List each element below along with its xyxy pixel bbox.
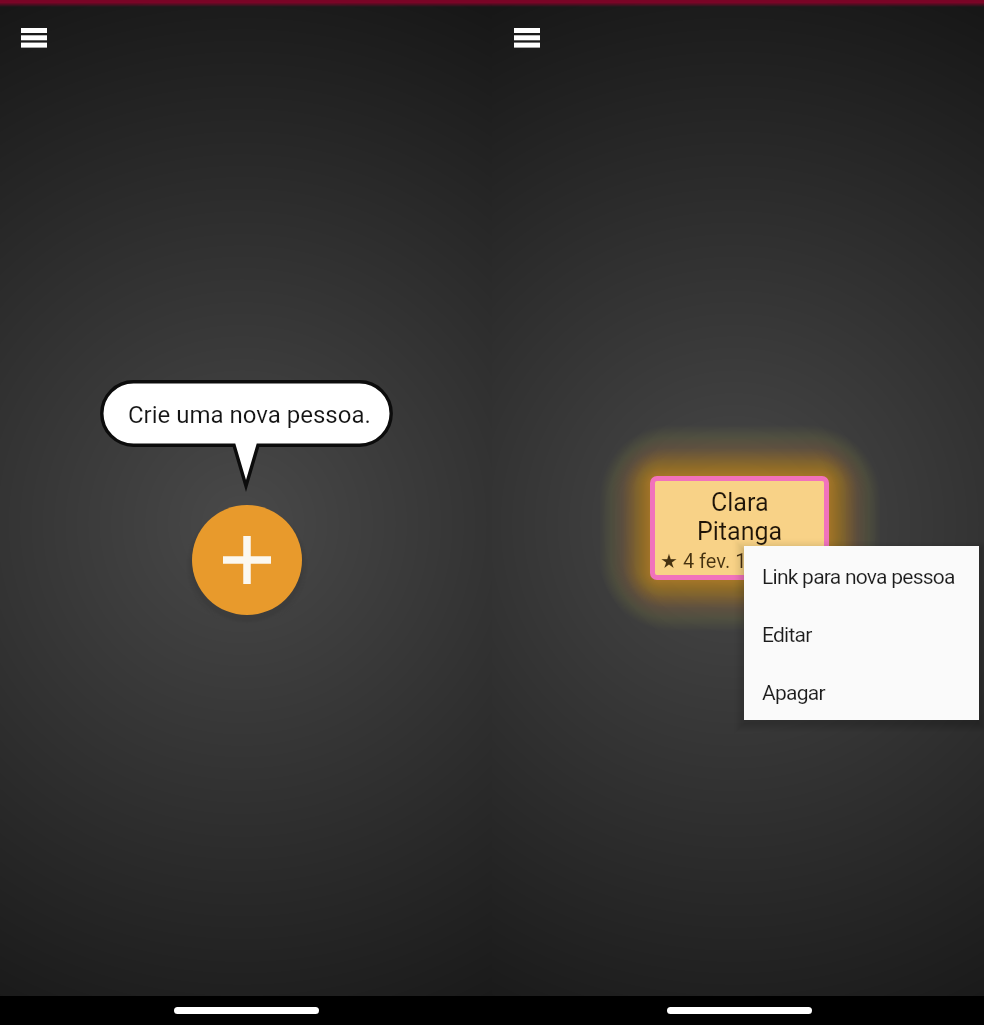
staticText: Link para nova pessoa bbox=[762, 565, 955, 590]
staticText: ★ 4 fev. 1 bbox=[660, 549, 747, 572]
button[interactable]: Menu bbox=[10, 14, 58, 62]
button[interactable]: Adicionar pessoa bbox=[192, 505, 302, 615]
button[interactable]: Link para nova pessoa bbox=[744, 546, 979, 604]
button[interactable]: Menu bbox=[503, 14, 551, 62]
button[interactable]: Clara bbox=[655, 481, 824, 575]
staticText: Apagar bbox=[762, 681, 825, 706]
staticText: Clara bbox=[711, 488, 769, 517]
button[interactable]: Editar bbox=[744, 604, 979, 662]
staticText: Pitanga bbox=[697, 517, 783, 546]
button[interactable]: Apagar bbox=[744, 662, 979, 720]
staticText: Crie uma nova pessoa. bbox=[128, 401, 371, 429]
staticText: Editar bbox=[762, 623, 812, 648]
